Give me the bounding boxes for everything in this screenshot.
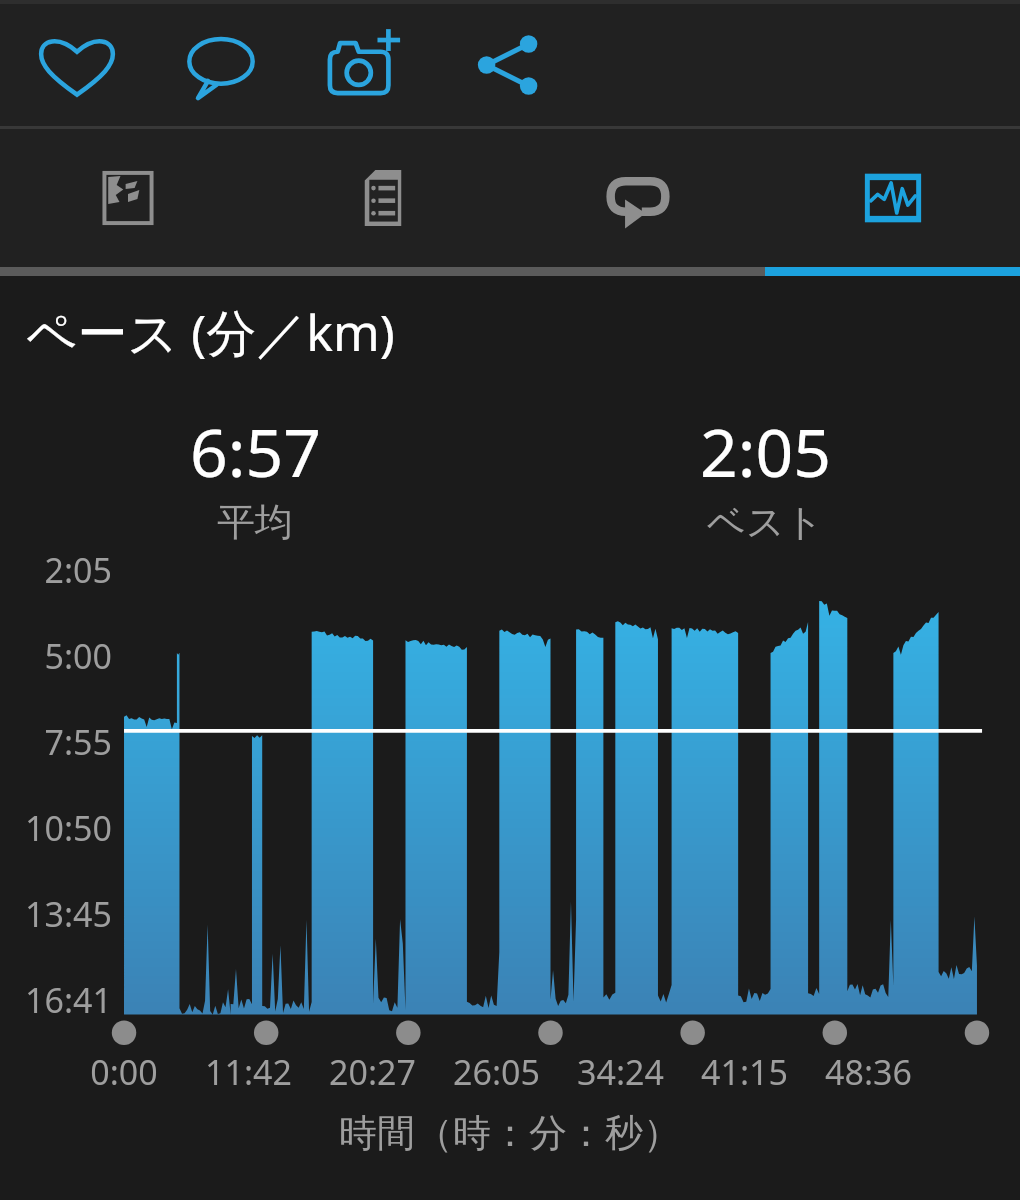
- button[interactable]: Share: [454, 4, 564, 126]
- staticText: 16:41: [0, 977, 112, 1023]
- staticText: 34:24: [577, 1049, 664, 1095]
- staticText: 7:55: [0, 719, 112, 765]
- staticText: 13:45: [0, 891, 112, 937]
- button[interactable]: Details tab: [255, 129, 510, 267]
- button[interactable]: Comment: [166, 4, 276, 126]
- staticText: 11:42: [205, 1049, 292, 1095]
- staticText: 平均: [217, 498, 293, 546]
- staticText: 6:57: [190, 406, 321, 496]
- button[interactable]: Map tab: [0, 129, 255, 267]
- button[interactable]: Laps tab: [510, 129, 765, 267]
- staticText: ペース (分／km): [26, 298, 395, 366]
- staticText: 26:05: [453, 1049, 540, 1095]
- button[interactable]: Graphs tab: [765, 129, 1020, 267]
- staticText: 20:27: [329, 1049, 416, 1095]
- staticText: 5:00: [0, 633, 112, 679]
- staticText: 10:50: [0, 805, 112, 851]
- staticText: 2:05: [700, 406, 831, 496]
- staticText: 41:15: [701, 1049, 788, 1095]
- staticText: ベスト: [707, 498, 824, 546]
- staticText: 時間（時：分：秒）: [339, 1109, 681, 1157]
- button[interactable]: Like: [22, 4, 132, 126]
- staticText: 48:36: [825, 1049, 912, 1095]
- staticText: 0:00: [90, 1049, 158, 1095]
- button[interactable]: Add photo: [310, 4, 420, 126]
- staticText: 2:05: [0, 547, 112, 593]
